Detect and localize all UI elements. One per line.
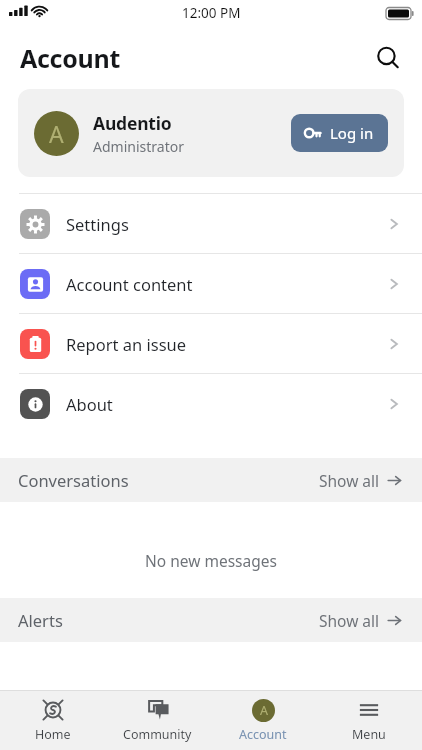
staticText: Log in xyxy=(330,123,374,143)
staticText: 12:00 PM xyxy=(182,4,241,22)
staticText: Account content xyxy=(66,273,193,295)
button[interactable]: Settings xyxy=(0,194,422,253)
staticText: A xyxy=(49,118,64,149)
staticText: A xyxy=(260,702,268,719)
button[interactable]: Log in xyxy=(291,114,388,152)
button[interactable]: A xyxy=(210,691,316,750)
staticText: Show all xyxy=(319,470,380,491)
button[interactable]: Community xyxy=(105,691,210,750)
button[interactable]: A xyxy=(18,89,404,177)
staticText: Audentio xyxy=(93,111,172,135)
staticText: About xyxy=(66,393,113,415)
staticText: Settings xyxy=(66,213,129,235)
staticText: Alerts xyxy=(18,609,63,631)
staticText: Conversations xyxy=(18,469,129,491)
staticText: Administrator xyxy=(93,137,184,156)
button[interactable]: Show all xyxy=(317,464,404,497)
staticText: No new messages xyxy=(145,550,277,571)
button[interactable]: Report an issue xyxy=(0,314,422,373)
button[interactable]: Show all xyxy=(317,604,404,637)
button[interactable]: Home xyxy=(0,691,105,750)
button[interactable]: Account content xyxy=(0,254,422,313)
staticText: Account xyxy=(239,726,287,743)
button[interactable]: Menu xyxy=(316,691,422,750)
staticText: Account xyxy=(20,41,120,75)
staticText: Community xyxy=(123,726,192,743)
button[interactable]: Search xyxy=(364,34,412,82)
staticText: Home xyxy=(35,726,71,743)
staticText: Menu xyxy=(352,726,386,743)
staticText: Show all xyxy=(319,610,380,631)
button[interactable]: About xyxy=(0,374,422,433)
staticText: Report an issue xyxy=(66,333,187,355)
